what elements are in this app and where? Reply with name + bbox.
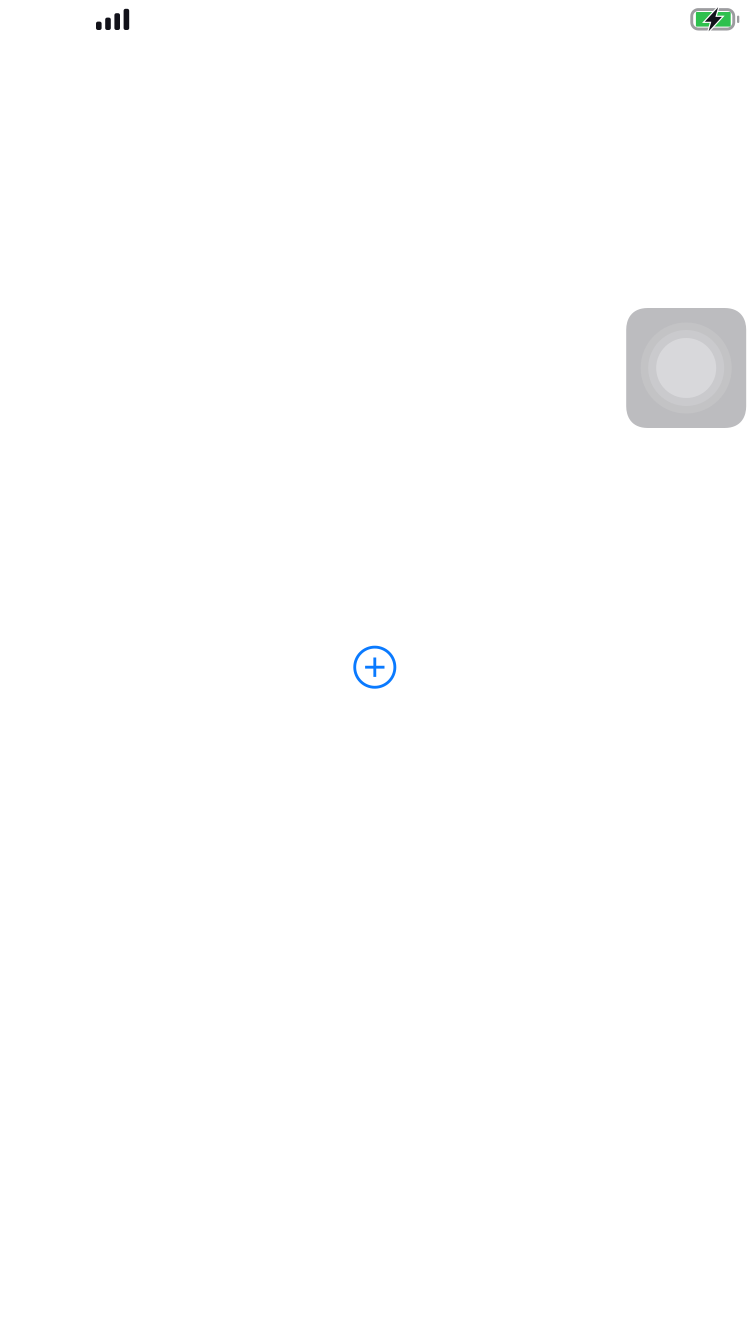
button[interactable]: Add bbox=[344, 636, 406, 698]
